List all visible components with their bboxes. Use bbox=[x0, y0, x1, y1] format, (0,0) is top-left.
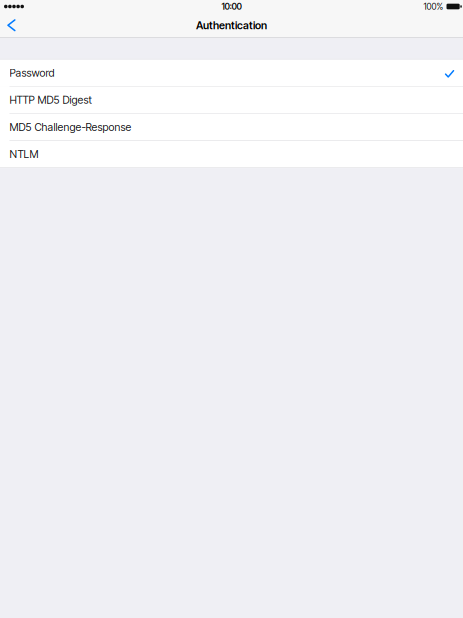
staticText: Password bbox=[9, 66, 54, 79]
staticText: 10:00 bbox=[221, 1, 241, 12]
button[interactable]: MD5 Challenge-Response bbox=[0, 114, 463, 141]
staticText: MD5 Challenge-Response bbox=[9, 121, 131, 133]
button[interactable]: Password bbox=[0, 60, 463, 87]
button[interactable]: HTTP MD5 Digest bbox=[0, 87, 463, 114]
button[interactable]: NTLM bbox=[0, 141, 463, 168]
staticText: NTLM bbox=[9, 148, 38, 161]
staticText: HTTP MD5 Digest bbox=[9, 93, 91, 106]
button[interactable]: Back bbox=[0, 14, 27, 36]
staticText: 100% bbox=[423, 1, 443, 12]
staticText: Authentication bbox=[196, 19, 267, 32]
